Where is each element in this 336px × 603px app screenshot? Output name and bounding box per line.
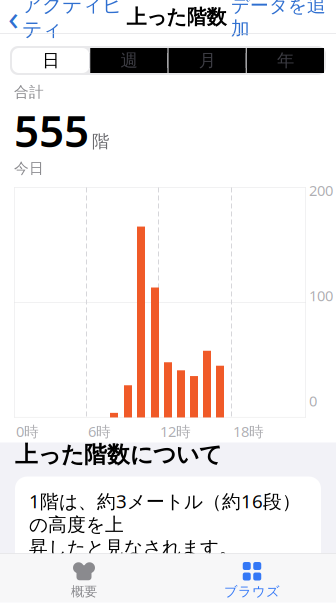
- staticText: 0時: [16, 421, 39, 441]
- staticText: 週: [120, 50, 137, 71]
- staticText: ブラウズ: [224, 583, 280, 600]
- staticText: 日: [42, 50, 59, 71]
- staticText: データを追加: [231, 0, 326, 40]
- staticText: 555: [14, 101, 89, 159]
- staticText: 階: [92, 131, 109, 152]
- button[interactable]: ‹: [0, 0, 122, 47]
- button[interactable]: ブラウズ: [168, 556, 336, 600]
- button[interactable]: 年: [247, 48, 324, 73]
- staticText: 12時: [160, 421, 191, 441]
- staticText: 18時: [233, 421, 264, 441]
- button[interactable]: データを追加: [231, 0, 336, 46]
- staticText: ‹: [8, 0, 19, 40]
- staticText: 合計: [14, 83, 44, 101]
- staticText: 年: [277, 50, 294, 71]
- staticText: 上った階数について: [15, 441, 222, 468]
- button[interactable]: 日: [12, 48, 89, 73]
- staticText: アクティビティ: [22, 0, 122, 41]
- staticText: 0: [309, 391, 317, 410]
- staticText: 200: [309, 180, 333, 200]
- staticText: 1階は、約3メートル（約16段）の高度を上 昇したと見なされます。: [29, 489, 301, 559]
- button[interactable]: 概要: [0, 556, 168, 600]
- staticText: 今日: [14, 159, 44, 177]
- staticText: 概要: [71, 583, 97, 600]
- staticText: 上った階数: [126, 5, 226, 29]
- button[interactable]: 週: [90, 48, 167, 73]
- staticText: 100: [309, 286, 333, 305]
- button[interactable]: 月: [168, 48, 246, 73]
- staticText: 月: [199, 50, 216, 71]
- staticText: 6時: [88, 421, 111, 441]
